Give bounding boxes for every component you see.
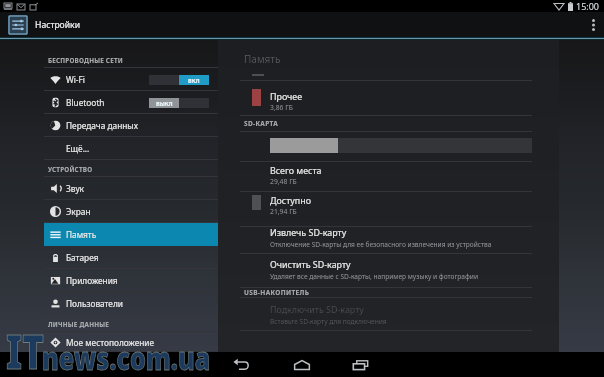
staticText: Память [244,52,281,66]
staticText: Доступно [270,194,311,206]
staticText: USB-НАКОПИТЕЛЬ [244,288,310,297]
staticText: ВЫКЛ [156,100,173,107]
button[interactable]: Bluetooth [44,91,218,114]
staticText: Bluetooth [66,97,105,108]
staticText: Подключить SD-карту [270,303,364,315]
staticText: Батарея [66,252,99,263]
staticText: Извлечь SD-карту [270,226,347,238]
staticText: Отключение SD-карты для ее безопасного и… [270,240,492,249]
staticText: 21,94 ГБ [270,207,297,216]
staticText: Звук [66,183,85,194]
staticText: Настройки [35,19,80,31]
staticText: Прочее [270,90,303,102]
button[interactable]: Звук [44,177,218,200]
staticText: УСТРОЙСТВО [48,165,93,174]
staticText: 3,86 ГБ [270,103,293,112]
staticText: Вставьте SD-карту для подключения [270,317,387,326]
staticText: Очистить SD-карту [270,258,351,270]
button[interactable]: Мое местоположение [44,332,218,352]
staticText: IT [6,319,44,377]
button[interactable]: Wi-Fi [44,68,218,91]
button[interactable]: Экран [44,200,218,223]
staticText: 15:00 [576,0,600,12]
button[interactable]: Back [212,353,271,377]
button[interactable]: Ещё... [44,137,218,160]
staticText: ВКЛ [188,77,200,84]
staticText: Передача данных [66,120,138,131]
staticText: Удаляет все данные с SD-карты, например … [270,272,479,281]
staticText: SD-КАРТА [244,119,279,128]
button[interactable]: More options [582,12,604,38]
staticText: IT [6,319,44,377]
staticText: Память [66,229,97,240]
staticText: 29,48 ГБ [270,177,297,186]
staticText: Мое местоположение [66,337,155,348]
staticText: Пользователи [66,298,123,309]
button[interactable]: Пользователи [44,292,218,315]
staticText: Ещё... [66,143,90,154]
staticText: Приложения [66,275,118,286]
button[interactable]: Память [44,223,218,246]
staticText: БЕСПРОВОДНЫЕ СЕТИ [48,56,123,65]
button[interactable]: Settings [8,15,28,35]
staticText: ЛИЧНЫЕ ДАННЫЕ [48,320,110,329]
button[interactable]: Приложения [44,269,218,292]
staticText: Экран [66,206,91,217]
staticText: news.com.ua [42,336,210,377]
button[interactable]: Recent apps [331,353,390,377]
button[interactable]: Батарея [44,246,218,269]
staticText: Всего места [270,164,322,176]
staticText: Wi-Fi [66,74,85,85]
button[interactable]: Home [272,353,331,377]
staticText: news.com.ua [42,336,210,377]
button[interactable]: Передача данных [44,114,218,137]
